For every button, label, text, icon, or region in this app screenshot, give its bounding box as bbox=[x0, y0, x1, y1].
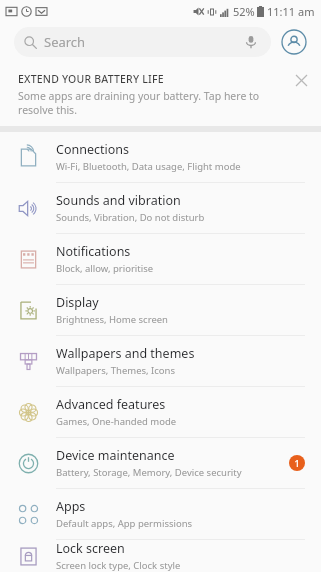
staticText: Sounds and vibration bbox=[56, 192, 181, 209]
staticText: Some apps are draining your battery. Tap… bbox=[18, 89, 281, 117]
button[interactable]: Account bbox=[281, 29, 307, 55]
button[interactable]: Wallpapers and themes bbox=[0, 336, 321, 386]
staticText: Connections bbox=[56, 141, 129, 158]
button[interactable]: Dismiss bbox=[289, 68, 313, 92]
staticText: Lock screen bbox=[56, 540, 125, 557]
staticText: 1 bbox=[294, 457, 300, 469]
staticText: Wi-Fi, Bluetooth, Data usage, Flight mod… bbox=[56, 160, 241, 173]
button[interactable]: Advanced features bbox=[0, 387, 321, 437]
staticText: Default apps, App permissions bbox=[56, 517, 193, 530]
button[interactable]: Display bbox=[0, 285, 321, 335]
staticText: Screen lock type, Clock style bbox=[56, 559, 181, 572]
staticText: Block, allow, prioritise bbox=[56, 262, 154, 275]
staticText: Display bbox=[56, 294, 99, 311]
button[interactable]: Sounds and vibration bbox=[0, 183, 321, 233]
staticText: Notifications bbox=[56, 243, 131, 260]
staticText: Device maintenance bbox=[56, 447, 175, 464]
staticText: 52% bbox=[233, 4, 255, 19]
staticText: Search bbox=[44, 33, 86, 51]
button[interactable]: Lock screen bbox=[0, 540, 321, 572]
button[interactable]: EXTEND YOUR BATTERY LIFE bbox=[0, 62, 321, 126]
button[interactable]: Apps bbox=[0, 489, 321, 539]
staticText: 11:11 am bbox=[267, 4, 315, 19]
staticText: Battery, Storage, Memory, Device securit… bbox=[56, 466, 242, 479]
staticText: Wallpapers, Themes, Icons bbox=[56, 364, 176, 377]
button[interactable]: Voice search bbox=[241, 32, 261, 52]
button[interactable]: Connections bbox=[0, 132, 321, 182]
staticText: Wallpapers and themes bbox=[56, 345, 195, 362]
button[interactable]: Search bbox=[14, 27, 271, 57]
staticText: Advanced features bbox=[56, 396, 166, 413]
staticText: Apps bbox=[56, 498, 86, 515]
staticText: Sounds, Vibration, Do not disturb bbox=[56, 211, 205, 224]
button[interactable]: Device maintenance bbox=[0, 438, 321, 488]
staticText: EXTEND YOUR BATTERY LIFE bbox=[18, 72, 164, 86]
button[interactable]: Notifications bbox=[0, 234, 321, 284]
staticText: Games, One-handed mode bbox=[56, 415, 177, 428]
staticText: Brightness, Home screen bbox=[56, 313, 168, 326]
